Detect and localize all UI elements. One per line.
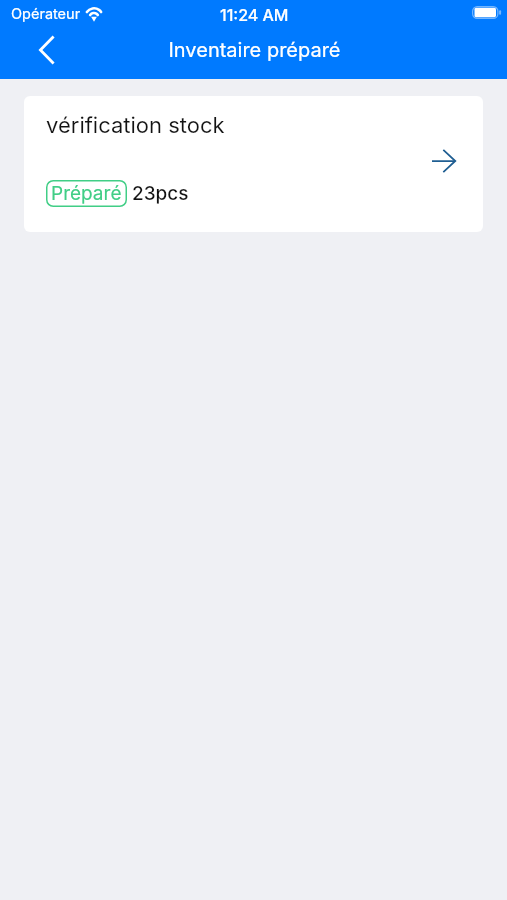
staticText: vérification stock [46, 112, 225, 139]
staticText: Préparé [51, 182, 122, 205]
button[interactable]: Ouvrir [420, 137, 468, 185]
staticText: 23pcs [132, 182, 189, 205]
button[interactable]: vérification stock [24, 96, 483, 232]
staticText: Opérateur [11, 5, 81, 23]
button[interactable]: Retour [28, 31, 65, 68]
staticText: Inventaire préparé [168, 38, 341, 62]
staticText: 11:24 AM [220, 5, 289, 24]
